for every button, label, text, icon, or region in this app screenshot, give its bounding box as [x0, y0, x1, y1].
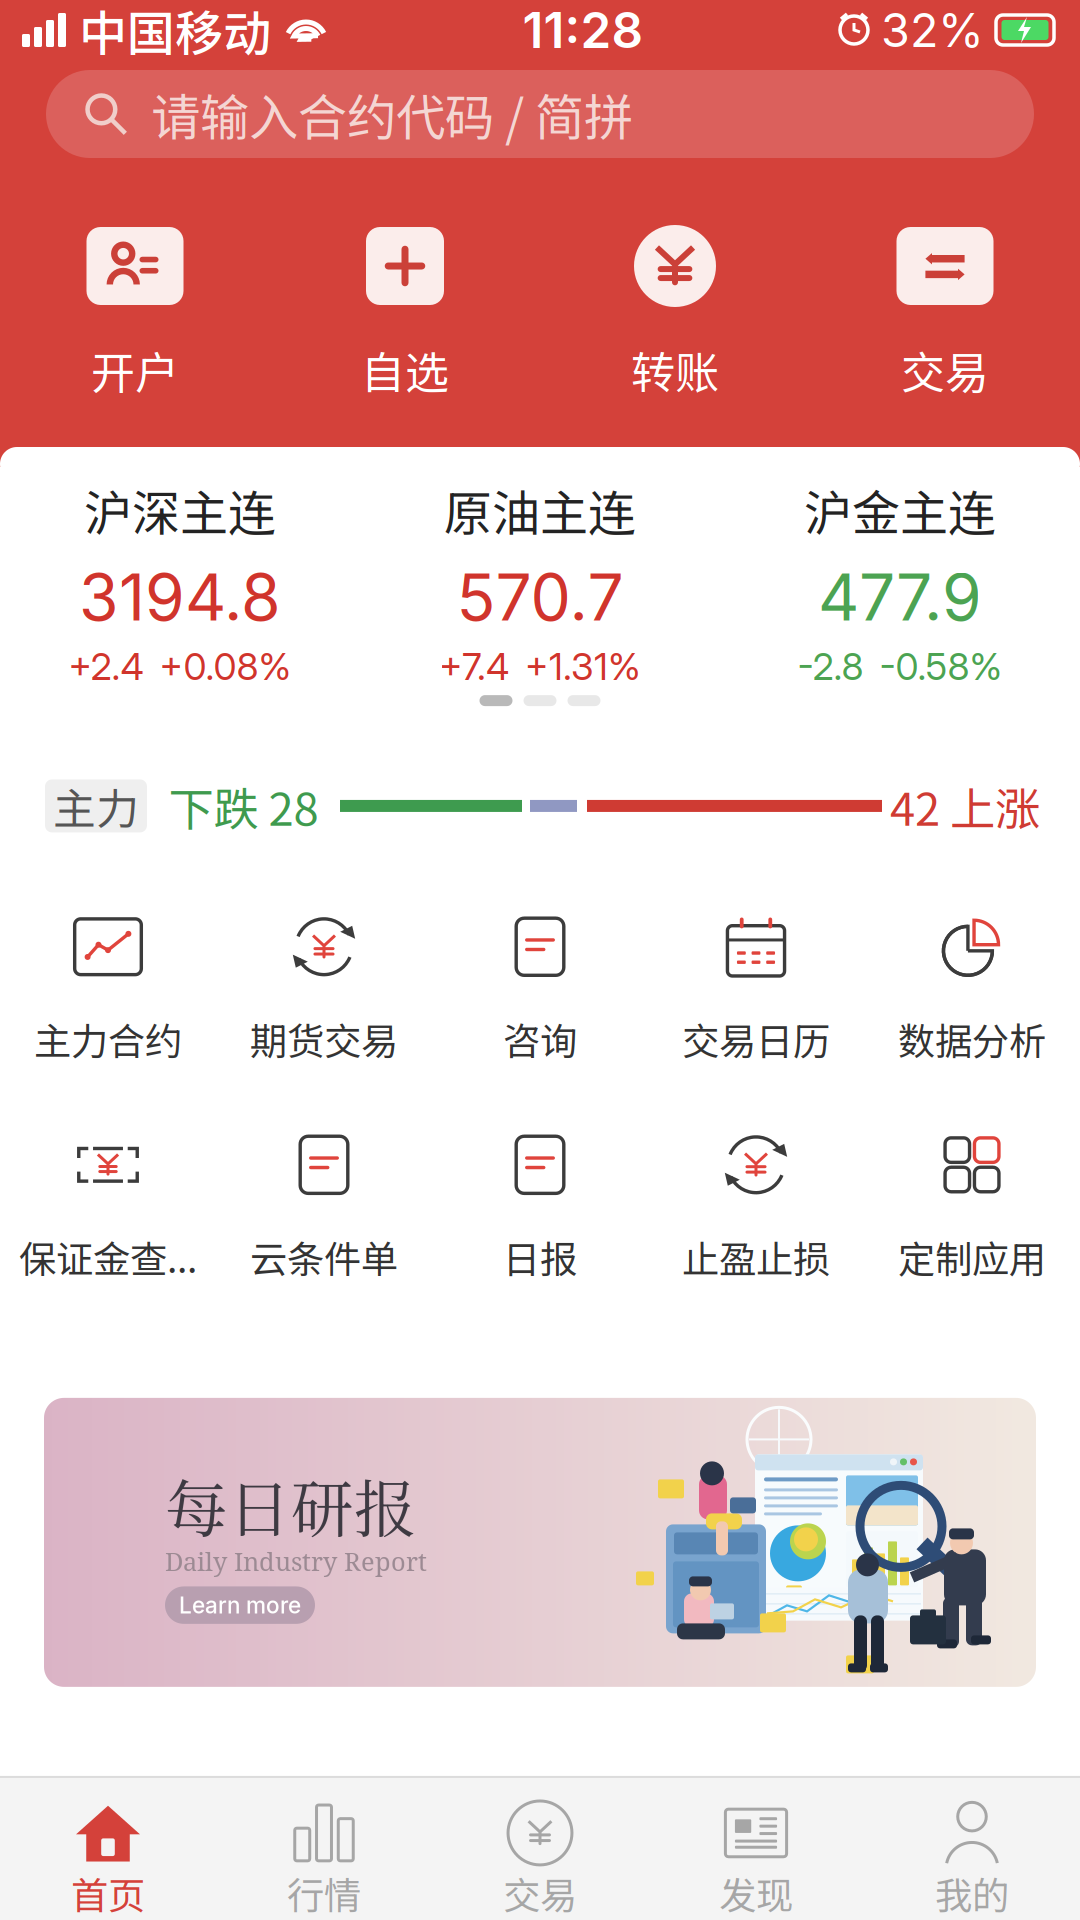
staticText: 转账: [631, 338, 719, 402]
staticText: Learn more: [179, 1591, 301, 1619]
button[interactable]: 请输入合约代码 / 简拼: [0, 70, 1080, 158]
staticText: 3194.8: [79, 558, 281, 636]
staticText: +2.4: [68, 644, 143, 689]
button[interactable]: 我的: [864, 1776, 1080, 1920]
button[interactable]: 止盈止损: [648, 1131, 864, 1284]
staticText: -2.8: [797, 644, 863, 689]
staticText: -0.58%: [879, 644, 1002, 689]
button[interactable]: 交易日历: [648, 913, 864, 1066]
staticText: 交易: [503, 1866, 577, 1920]
button[interactable]: 咨询: [432, 913, 648, 1066]
staticText: 下跌 28: [168, 773, 318, 839]
button[interactable]: 首页: [0, 1776, 216, 1920]
button[interactable]: 保证金查...: [0, 1131, 216, 1284]
button[interactable]: 自选: [270, 225, 540, 402]
staticText: 主力合约: [34, 1012, 182, 1066]
staticText: 交易日历: [682, 1012, 830, 1066]
staticText: 原油主连: [444, 475, 636, 544]
staticText: 期货交易: [250, 1012, 398, 1066]
button[interactable]: Learn more: [165, 1586, 315, 1624]
staticText: 主力: [53, 775, 139, 837]
staticText: 开户: [91, 338, 179, 402]
button[interactable]: 交易: [432, 1776, 648, 1920]
staticText: 发现: [719, 1866, 793, 1920]
button[interactable]: 每日研报: [44, 1398, 1036, 1687]
staticText: 沪金主连: [804, 475, 996, 544]
button[interactable]: 日报: [432, 1131, 648, 1284]
staticText: 477.9: [818, 558, 982, 636]
staticText: 日报: [503, 1230, 577, 1284]
staticText: Daily Industry Report: [165, 1544, 427, 1578]
staticText: 32%: [881, 2, 984, 58]
staticText: +1.31%: [525, 644, 641, 689]
staticText: 570.7: [456, 558, 623, 636]
button[interactable]: 行情: [216, 1776, 432, 1920]
staticText: 保证金查...: [19, 1230, 197, 1284]
button[interactable]: 定制应用: [864, 1131, 1080, 1284]
staticText: 定制应用: [898, 1230, 1046, 1284]
button[interactable]: 开户: [0, 225, 270, 402]
staticText: 首页: [71, 1866, 145, 1920]
staticText: 云条件单: [250, 1230, 398, 1284]
staticText: 自选: [361, 338, 449, 402]
staticText: +7.4: [439, 644, 509, 689]
staticText: +0.08%: [159, 644, 291, 689]
button[interactable]: 主力合约: [0, 913, 216, 1066]
staticText: 42 上涨: [890, 773, 1040, 839]
button[interactable]: 云条件单: [216, 1131, 432, 1284]
button[interactable]: 发现: [648, 1776, 864, 1920]
button[interactable]: 交易: [810, 225, 1080, 402]
staticText: 沪深主连: [84, 475, 276, 544]
staticText: 中国移动: [79, 0, 271, 65]
staticText: 每日研报: [165, 1460, 417, 1550]
button[interactable]: 期货交易: [216, 913, 432, 1066]
staticText: 止盈止损: [682, 1230, 830, 1284]
staticText: 行情: [287, 1866, 361, 1920]
staticText: 咨询: [503, 1012, 577, 1066]
staticText: 数据分析: [898, 1012, 1046, 1066]
staticText: 交易: [901, 338, 989, 402]
button[interactable]: 数据分析: [864, 913, 1080, 1066]
staticText: 请输入合约代码 / 简拼: [151, 78, 633, 150]
staticText: 11:28: [522, 0, 643, 60]
staticText: 我的: [935, 1866, 1009, 1920]
button[interactable]: 转账: [540, 225, 810, 402]
